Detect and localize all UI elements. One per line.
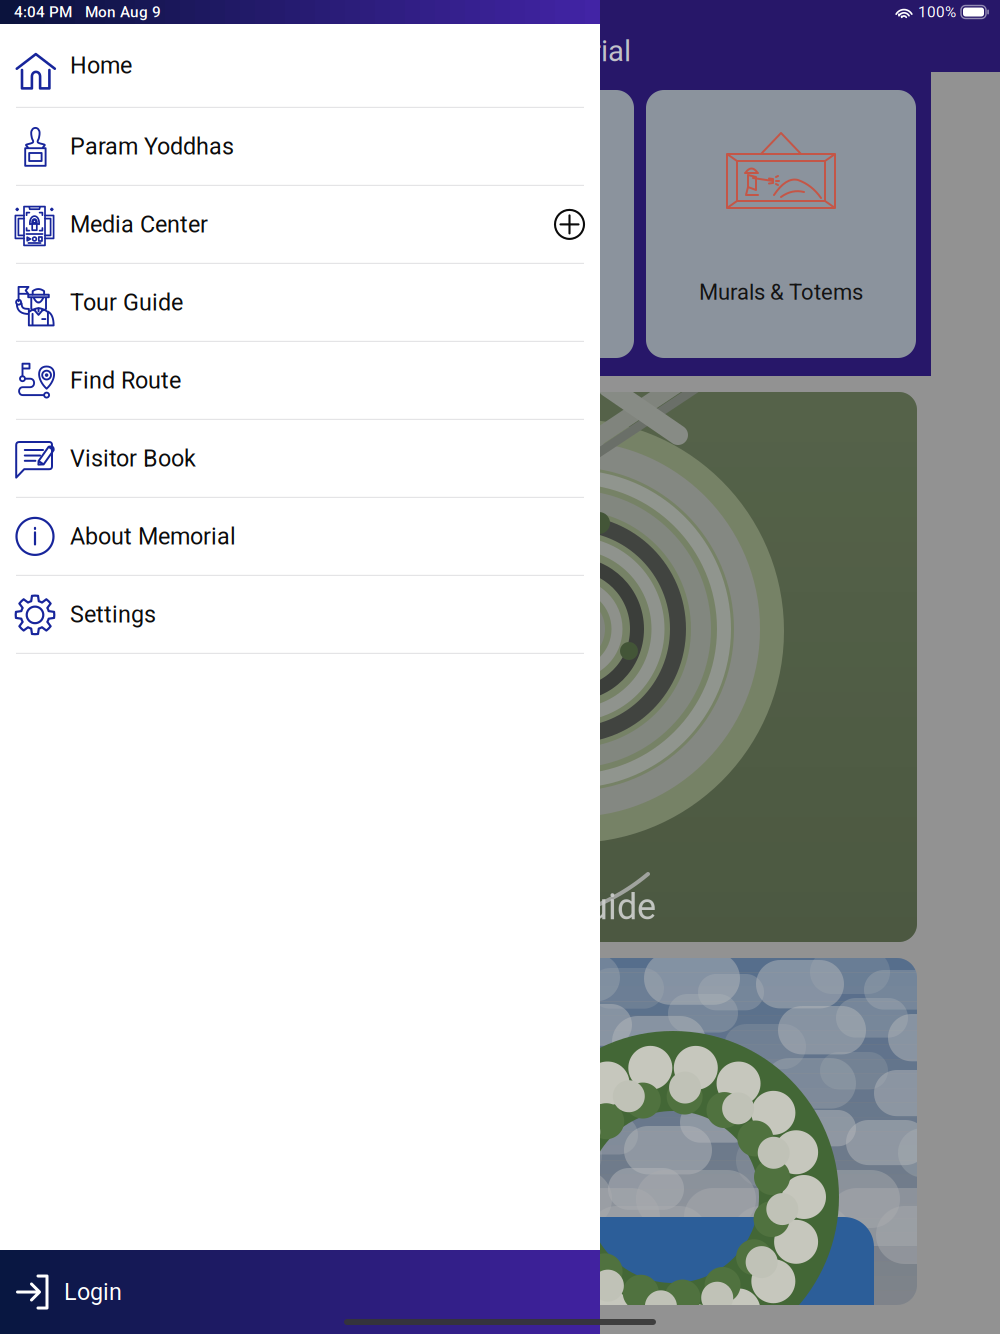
button[interactable]: Home — [0, 24, 600, 108]
staticText: Tour Guide — [70, 289, 183, 316]
button[interactable]: Settings — [0, 576, 600, 654]
button[interactable]: Tour Guide — [0, 264, 600, 342]
staticText: Param Yoddhas — [70, 133, 234, 160]
staticText: About Memorial — [70, 523, 236, 550]
staticText: Murals & Totems — [699, 279, 863, 305]
button[interactable]: About Memorial — [0, 498, 600, 576]
staticText: 100% — [918, 3, 956, 21]
staticText: Login — [64, 1278, 122, 1306]
staticText: Tour Guide — [481, 886, 656, 928]
button[interactable]: Bravehearts — [372, 90, 634, 358]
staticText: Media Center — [70, 211, 208, 238]
staticText: Visitor Book — [70, 445, 196, 472]
staticText: Home — [70, 52, 132, 79]
button[interactable]: Visitor Book — [0, 420, 600, 498]
button[interactable]: Murals & Totems — [646, 90, 916, 358]
staticText: Mon Aug 9 — [85, 3, 161, 21]
button[interactable]: Find Route — [0, 342, 600, 420]
staticText: National War Memorial — [330, 34, 631, 68]
button[interactable]: Param Yoddhas — [0, 108, 600, 186]
button[interactable]: Media Center — [0, 186, 600, 264]
staticText: 4:04 PM — [14, 3, 72, 21]
staticText: Settings — [70, 601, 156, 628]
staticText: Find Route — [70, 367, 181, 394]
button[interactable]: Login — [0, 1250, 600, 1334]
